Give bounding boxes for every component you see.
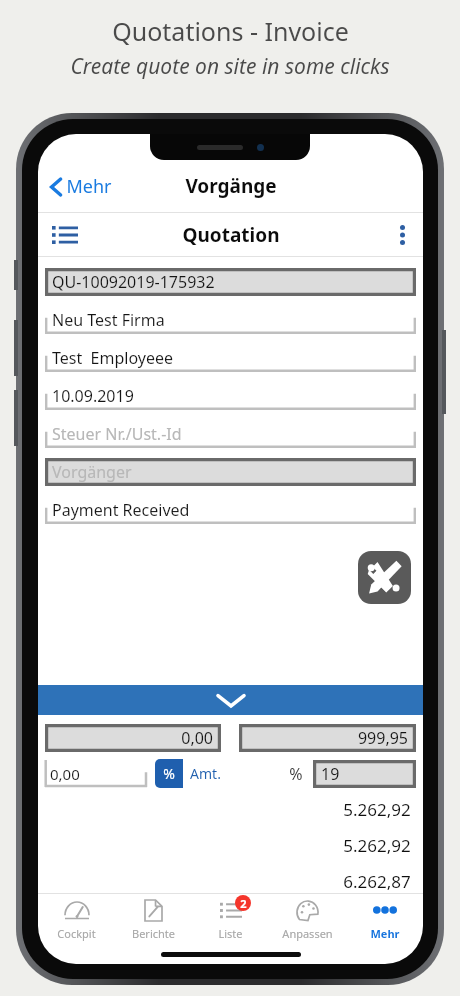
staticText: 5.262,92 <box>343 798 411 821</box>
button[interactable]: Steuer Nr./Ust.-Id <box>45 420 416 448</box>
button[interactable]: More options <box>392 217 413 253</box>
button[interactable]: Berichte <box>115 894 192 944</box>
button[interactable]: Mehr <box>46 168 116 205</box>
button[interactable]: Cockpit <box>38 894 115 944</box>
button[interactable]: 10.09.2019 <box>45 382 416 410</box>
staticText: Quotations - Invoice <box>112 14 349 48</box>
button[interactable]: % <box>155 759 227 788</box>
staticText: 5.262,92 <box>343 834 411 857</box>
staticText: % <box>163 764 175 783</box>
button[interactable]: QU-10092019-175932 <box>45 268 416 296</box>
button[interactable]: Vorgänger <box>45 458 416 486</box>
button[interactable]: Tools <box>358 551 411 604</box>
staticText: 0,00 <box>181 727 213 749</box>
staticText: Cockpit <box>57 926 96 941</box>
button[interactable]: 0,00 <box>45 724 221 752</box>
staticText: QU-10092019-175932 <box>52 271 215 293</box>
staticText: Vorgänge <box>185 173 277 199</box>
staticText: 2 <box>240 896 247 911</box>
staticText: Neu Test Firma <box>52 309 165 331</box>
button[interactable]: 2 <box>192 894 269 944</box>
staticText: 0,00 <box>50 764 80 784</box>
staticText: Quotation <box>182 222 280 248</box>
button[interactable]: Mehr <box>346 894 423 944</box>
staticText: 6.262,87 <box>343 870 411 893</box>
button[interactable]: Neu Test Firma <box>45 306 416 334</box>
staticText: Test Employeee <box>52 347 173 369</box>
staticText: Berichte <box>132 926 175 941</box>
staticText: Create quote on site in some clicks <box>70 52 390 81</box>
button[interactable]: 999,95 <box>239 724 416 752</box>
staticText: Liste <box>218 926 243 941</box>
staticText: Amt. <box>190 764 221 783</box>
button[interactable]: Anpassen <box>269 894 346 944</box>
staticText: 10.09.2019 <box>52 385 134 407</box>
staticText: Payment Received <box>52 499 190 521</box>
staticText: Steuer Nr./Ust.-Id <box>52 423 182 445</box>
button[interactable]: Expand <box>38 685 423 715</box>
button[interactable]: Payment Received <box>45 496 416 524</box>
staticText: % <box>289 763 303 785</box>
staticText: 999,95 <box>357 727 408 749</box>
staticText: 19 <box>321 763 340 785</box>
staticText: Mehr <box>370 926 400 941</box>
button[interactable]: List <box>46 219 84 251</box>
staticText: Vorgänger <box>52 461 132 483</box>
button[interactable]: 19 <box>313 760 416 788</box>
button[interactable]: Test Employeee <box>45 344 416 372</box>
staticText: Anpassen <box>282 926 333 941</box>
staticText: Mehr <box>66 174 112 199</box>
